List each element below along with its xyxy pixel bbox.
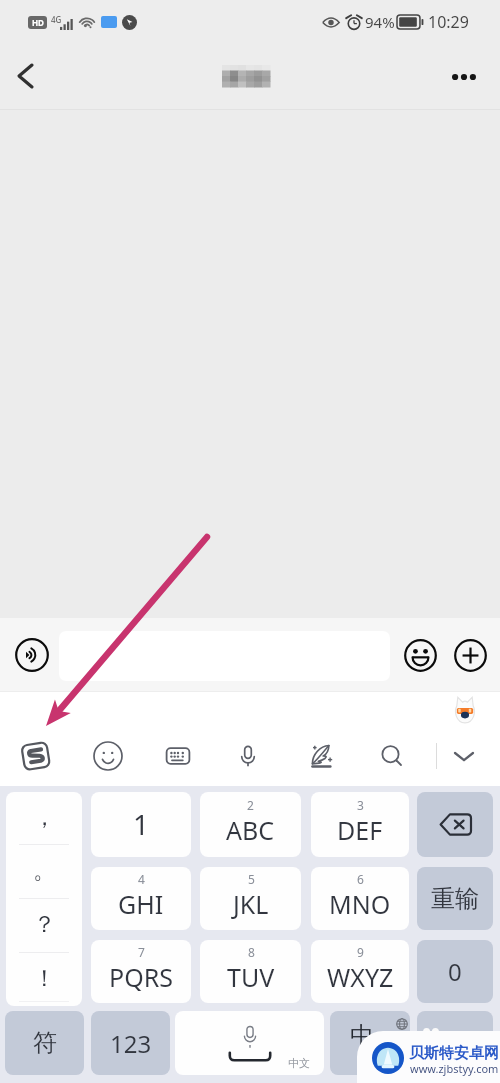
staticText: 8 — [248, 944, 255, 960]
staticText: 0 — [448, 955, 462, 988]
staticText: ！ — [33, 964, 56, 993]
staticText: 重输 — [431, 884, 479, 914]
staticText: 7 — [138, 944, 145, 960]
button[interactable]: Redo — [417, 867, 493, 930]
staticText: 123 — [110, 1027, 152, 1060]
staticText: 4 — [138, 871, 145, 887]
button[interactable]: Chinese input — [330, 1011, 410, 1075]
staticText: 94% — [365, 12, 395, 32]
button[interactable]: Emoji key — [417, 1011, 493, 1075]
button[interactable]: Symbols — [5, 1011, 84, 1075]
button[interactable]: Space — [175, 1011, 324, 1075]
button[interactable]: 6 — [311, 867, 409, 930]
button[interactable]: 1 — [91, 792, 191, 857]
button[interactable]: Numbers — [91, 1011, 170, 1075]
button[interactable]: 9 — [311, 940, 409, 1003]
button[interactable]: 。 — [6, 845, 82, 898]
button[interactable]: 5 — [200, 867, 301, 930]
staticText: ？ — [33, 910, 56, 939]
button[interactable]: 2 — [200, 792, 301, 857]
staticText: 。 — [33, 856, 56, 885]
staticText: PQRS — [109, 960, 173, 994]
staticText: 9 — [357, 944, 364, 960]
staticText: HD — [32, 17, 44, 28]
button[interactable]: Back — [0, 46, 50, 110]
staticText: 2 — [247, 797, 254, 813]
staticText: 3 — [357, 797, 364, 813]
staticText: 10:29 — [428, 11, 469, 33]
staticText: 6 — [357, 871, 364, 887]
button[interactable]: Emoji — [399, 634, 441, 676]
button[interactable]: Hide keyboard — [445, 737, 483, 775]
button[interactable]: More — [449, 634, 491, 676]
button[interactable]: Search — [373, 737, 411, 775]
button[interactable]: Voice input — [10, 633, 53, 676]
button[interactable]: 7 — [91, 940, 191, 1003]
staticText: 4G — [51, 14, 62, 25]
staticText: 贝斯特安卓网 — [409, 1044, 499, 1063]
staticText: 中文 — [288, 1056, 310, 1070]
button[interactable]: Voice — [229, 737, 267, 775]
button[interactable]: Backspace — [417, 792, 493, 857]
button[interactable]: Keyboard layout — [159, 737, 197, 775]
button[interactable]: ？ — [6, 899, 82, 952]
staticText: www.zjbstyy.com — [410, 1061, 499, 1076]
button[interactable]: Zero — [417, 940, 493, 1003]
button[interactable]: Message input field — [59, 631, 390, 681]
staticText: 中 — [350, 1021, 374, 1051]
staticText: JKL — [233, 887, 269, 921]
staticText: ABC — [226, 813, 275, 847]
staticText: DEF — [337, 813, 383, 847]
button[interactable]: Handwriting — [303, 737, 341, 775]
staticText: 5 — [248, 871, 255, 887]
button[interactable]: 8 — [200, 940, 301, 1003]
button[interactable]: Sogou keyboard — [17, 737, 55, 775]
staticText: 1 — [133, 805, 150, 843]
staticText: GHI — [118, 887, 164, 921]
staticText: MNO — [329, 887, 391, 921]
button[interactable]: More options — [444, 46, 500, 110]
staticText: 符 — [33, 1028, 57, 1058]
button[interactable]: 3 — [311, 792, 409, 857]
staticText: TUV — [227, 960, 275, 994]
button[interactable]: 4 — [91, 867, 191, 930]
button[interactable]: ！ — [6, 953, 82, 1006]
staticText: ， — [33, 803, 56, 832]
staticText: WXYZ — [327, 960, 394, 994]
button[interactable]: Emoji — [89, 737, 127, 775]
button[interactable]: ， — [6, 792, 82, 844]
